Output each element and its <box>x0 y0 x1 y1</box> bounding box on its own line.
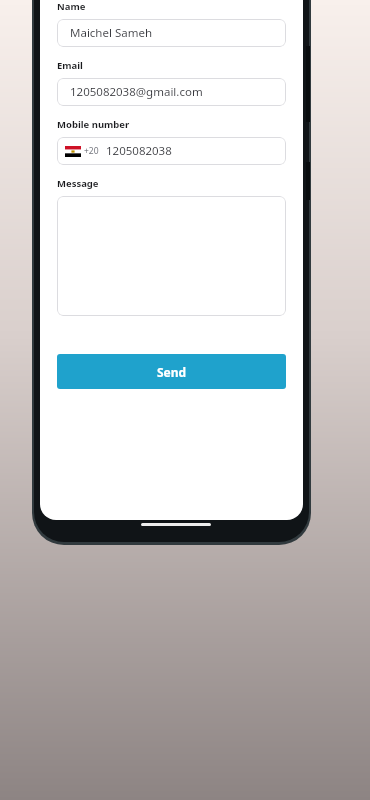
staticText: +20 <box>84 145 99 157</box>
staticText: Name <box>57 0 86 13</box>
staticText: Maichel Sameh <box>70 25 153 41</box>
staticText: Mobile number <box>57 118 130 131</box>
button[interactable]: +20 <box>57 137 286 165</box>
button[interactable]: Maichel Sameh <box>57 19 286 47</box>
button[interactable]: 1205082038@gmail.com <box>57 78 286 106</box>
button[interactable] <box>57 196 286 316</box>
other: Home <box>141 523 211 526</box>
staticText: Message <box>57 177 99 190</box>
staticText: Send <box>157 364 187 380</box>
staticText: 1205082038@gmail.com <box>70 84 203 100</box>
staticText: 1205082038 <box>106 143 172 159</box>
button[interactable]: Send <box>57 354 286 389</box>
staticText: Email <box>57 59 83 72</box>
